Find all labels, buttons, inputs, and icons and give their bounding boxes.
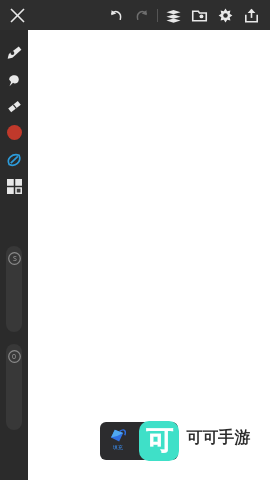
- staticText: 填充: [113, 444, 123, 450]
- button[interactable]: 填充: [100, 422, 178, 460]
- button[interactable]: Share: [238, 2, 264, 28]
- button[interactable]: 可可手游: [139, 421, 179, 461]
- button[interactable]: 可可手游: [186, 428, 250, 448]
- button[interactable]: Symmetry: [0, 146, 28, 173]
- button[interactable]: Color: [0, 119, 28, 146]
- button[interactable]: Layers panel: [0, 173, 28, 200]
- button[interactable]: Undo: [103, 2, 129, 28]
- button[interactable]: Close: [3, 1, 31, 29]
- button[interactable]: Brush size: [6, 246, 22, 332]
- button[interactable]: Redo: [129, 2, 155, 28]
- staticText: 0: [12, 352, 17, 362]
- staticText: S: [13, 254, 17, 264]
- button[interactable]: Opacity: [6, 344, 22, 430]
- button[interactable]: Settings: [212, 2, 238, 28]
- button[interactable]: Eraser: [0, 92, 28, 119]
- button[interactable]: Smudge: [0, 65, 28, 92]
- staticText: 可: [146, 424, 173, 458]
- button[interactable]: Pen: [0, 38, 28, 65]
- button[interactable]: Gallery: [186, 2, 212, 28]
- button[interactable]: Layers: [160, 2, 186, 28]
- staticText: 可可手游: [186, 428, 250, 448]
